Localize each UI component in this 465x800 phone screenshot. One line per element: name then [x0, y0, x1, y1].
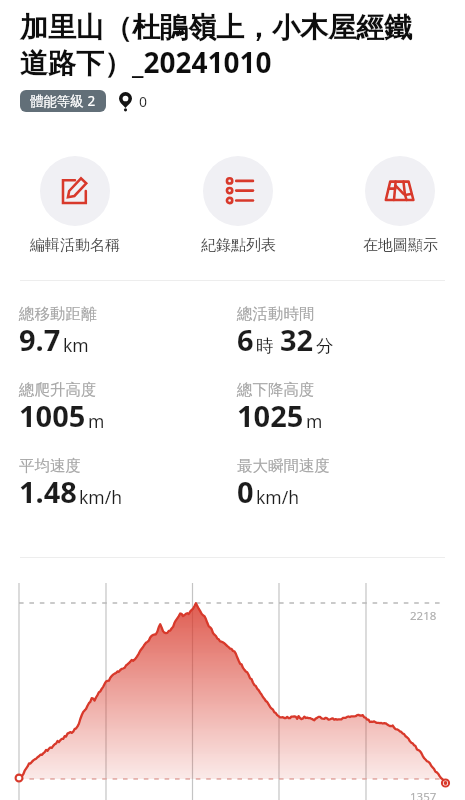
staticText: km/h: [79, 485, 123, 509]
staticText: 2218: [410, 608, 437, 624]
staticText: 1357: [410, 789, 437, 800]
staticText: 32: [280, 320, 314, 359]
staticText: 0: [237, 472, 254, 511]
staticText: 總移動距離: [19, 304, 97, 324]
staticText: km/h: [256, 485, 300, 509]
staticText: 紀錄點列表: [201, 236, 276, 255]
button[interactable]: 編輯活動名稱: [25, 156, 125, 255]
staticText: 0: [139, 92, 148, 111]
staticText: 加里山（杜鵑嶺上，小木屋經鐵道路下）_20241010: [20, 10, 427, 82]
staticText: 6: [237, 320, 254, 359]
staticText: 總爬升高度: [19, 380, 97, 400]
button[interactable]: 在地圖顯示: [350, 156, 450, 255]
staticText: 分: [316, 335, 334, 357]
staticText: 平均速度: [19, 456, 81, 476]
staticText: 總活動時間: [237, 304, 315, 324]
staticText: 總下降高度: [237, 380, 315, 400]
button[interactable]: 體能等級 2: [20, 90, 106, 112]
staticText: 編輯活動名稱: [30, 236, 120, 255]
staticText: 時: [256, 335, 274, 357]
staticText: m: [306, 409, 323, 433]
staticText: 在地圖顯示: [363, 236, 438, 255]
staticText: 最大瞬間速度: [237, 456, 330, 476]
staticText: 1005: [19, 396, 86, 435]
staticText: 9.7: [19, 320, 61, 359]
staticText: m: [88, 409, 105, 433]
staticText: 體能等級 2: [30, 92, 96, 110]
staticText: 1.48: [19, 472, 77, 511]
staticText: 1025: [237, 396, 304, 435]
staticText: km: [63, 333, 89, 357]
button[interactable]: 紀錄點列表: [188, 156, 288, 255]
